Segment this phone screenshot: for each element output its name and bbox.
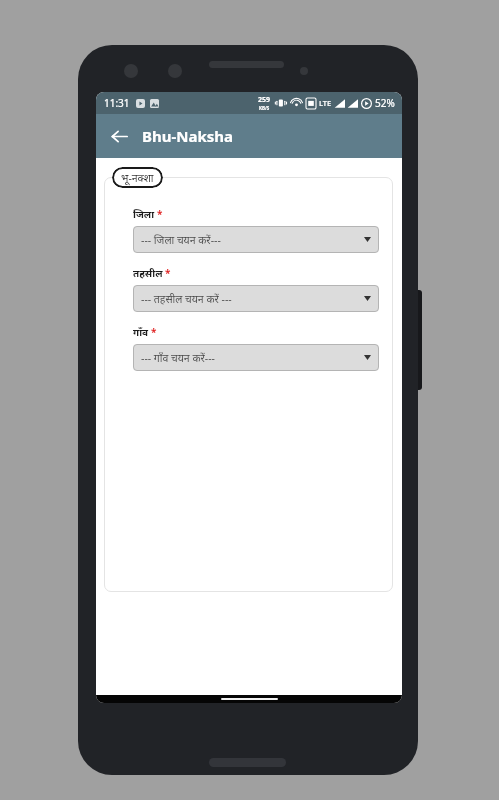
button[interactable]: --- तहसील चयन करें --- (133, 285, 379, 312)
button[interactable]: --- जिला चयन करें--- (133, 226, 379, 253)
button[interactable]: Back (102, 119, 136, 153)
staticText: 259 (258, 95, 271, 105)
staticText: 52% (375, 96, 395, 110)
staticText: --- तहसील चयन करें --- (141, 292, 232, 306)
staticText: * (165, 266, 171, 280)
staticText: --- जिला चयन करें--- (141, 233, 221, 247)
staticText: KB/S (259, 105, 270, 111)
staticText: 11:31 (104, 96, 130, 110)
button[interactable]: --- गाँव चयन करें--- (133, 344, 379, 371)
staticText: भू-नक्शा (121, 171, 154, 185)
staticText: गाँव (133, 325, 149, 339)
staticText: * (151, 325, 157, 339)
staticText: --- गाँव चयन करें--- (141, 351, 215, 365)
staticText: Bhu-Naksha (142, 126, 234, 146)
staticText: * (157, 207, 163, 221)
staticText: जिला (133, 207, 155, 221)
staticText: LTE (319, 98, 332, 108)
staticText: तहसील (133, 266, 163, 280)
